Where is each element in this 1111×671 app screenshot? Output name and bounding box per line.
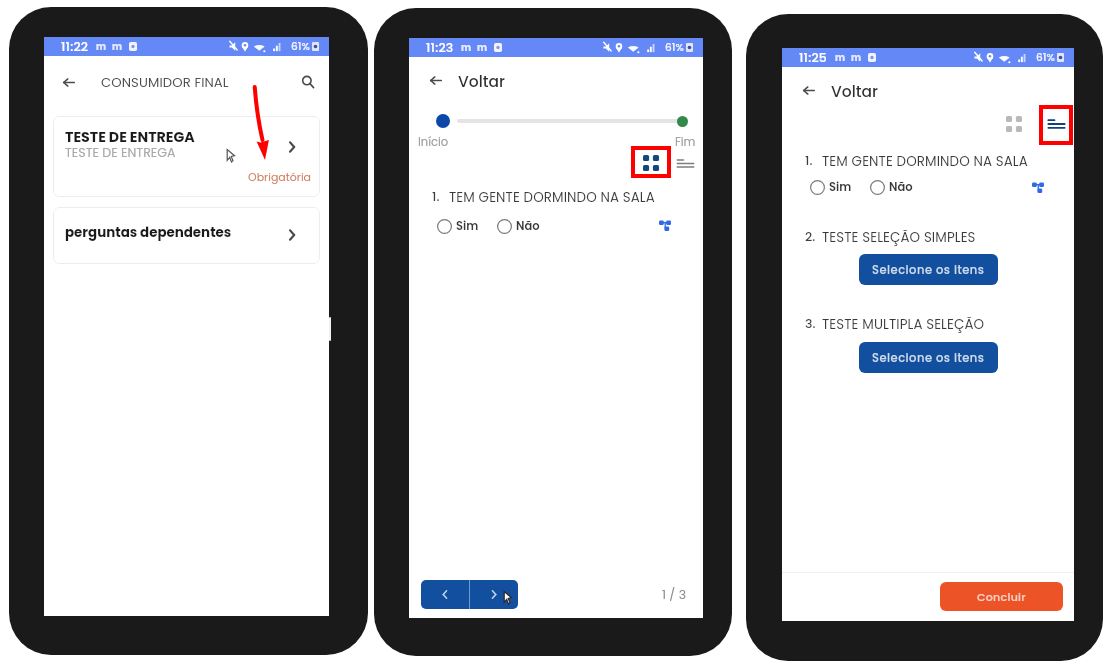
staticText: m [835, 51, 846, 64]
staticText: 2. [805, 228, 816, 245]
staticText: 61% [291, 39, 310, 54]
staticText: TESTE MULTIPLA SELEÇÃO [822, 315, 985, 334]
staticText: Voltar [458, 71, 505, 93]
staticText: Concluir [977, 589, 1026, 604]
staticText: m [461, 41, 472, 54]
button[interactable]: Previous [421, 580, 469, 609]
staticText: Sim [456, 218, 479, 234]
staticText: Selecione os itens [872, 350, 985, 366]
staticText: TESTE SELEÇÃO SIMPLES [822, 228, 976, 247]
button[interactable]: Back [798, 79, 820, 101]
button[interactable]: Não [870, 178, 913, 196]
staticText: 11:23 [426, 39, 454, 56]
button[interactable]: Next [470, 580, 518, 609]
staticText: perguntas dependentes [65, 223, 232, 242]
staticText: TEM GENTE DORMINDO NA SALA [449, 188, 655, 207]
button[interactable]: Concluir [940, 582, 1063, 611]
staticText: Fim [675, 134, 696, 150]
staticText: CONSUMIDOR FINAL [101, 73, 229, 91]
button[interactable]: perguntas dependentes [53, 207, 320, 264]
button[interactable]: List view [1042, 110, 1070, 138]
button[interactable]: Back [425, 69, 447, 91]
staticText: 1. [432, 188, 440, 205]
staticText: 11:22 [61, 38, 89, 55]
staticText: TEM GENTE DORMINDO NA SALA [822, 152, 1028, 171]
staticText: TESTE DE ENTREGA [65, 127, 195, 147]
staticText: m [851, 51, 862, 64]
button[interactable]: Grid view [637, 149, 665, 177]
staticText: Obrigatória [248, 169, 312, 184]
button[interactable]: Sim [810, 178, 852, 196]
staticText: Não [516, 218, 540, 234]
staticText: Selecione os itens [872, 262, 985, 278]
button[interactable]: Grid view [1000, 110, 1028, 138]
staticText: 61% [665, 40, 684, 55]
staticText: 11:25 [799, 49, 828, 66]
staticText: 61% [1036, 50, 1055, 65]
button[interactable]: Não [497, 217, 540, 235]
button[interactable]: Sim [437, 217, 479, 235]
staticText: TESTE DE ENTREGA [65, 144, 176, 162]
button[interactable]: Search [297, 71, 319, 93]
staticText: Não [889, 179, 913, 195]
staticText: m [112, 40, 123, 53]
staticText: Início [418, 134, 449, 150]
staticText: m [477, 41, 488, 54]
staticText: Sim [829, 179, 852, 195]
button[interactable]: Selecione os itens [859, 342, 998, 373]
staticText: Voltar [831, 81, 878, 103]
button[interactable]: TESTE DE ENTREGA [53, 116, 320, 197]
button[interactable]: Selecione os itens [859, 254, 998, 285]
button[interactable]: List view [671, 149, 699, 177]
staticText: 1. [805, 152, 813, 169]
staticText: 1 / 3 [662, 586, 686, 603]
staticText: m [96, 40, 107, 53]
button[interactable]: Back [58, 71, 80, 93]
staticText: 3. [805, 315, 816, 332]
